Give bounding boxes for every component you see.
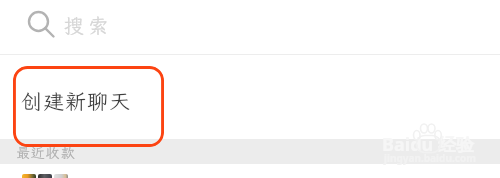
button[interactable]: Recent payment contacts xyxy=(22,174,68,178)
staticText: 最近收款 xyxy=(16,144,76,162)
staticText: jingyan.baidu.com xyxy=(384,151,476,165)
staticText: Baidu 经验 xyxy=(382,132,474,157)
staticText: 搜索 xyxy=(64,12,112,38)
button[interactable]: Search xyxy=(0,0,500,54)
staticText: 创建新聊天 xyxy=(21,87,131,115)
button[interactable]: 创建新聊天 xyxy=(13,66,164,147)
